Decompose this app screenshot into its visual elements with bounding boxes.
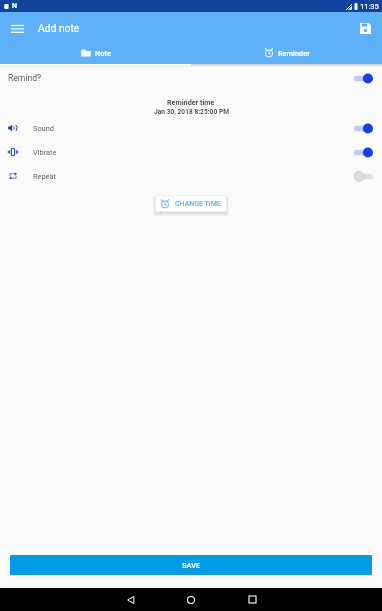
- button[interactable]: Remind?: [0, 64, 382, 92]
- button[interactable]: Recent apps: [237, 588, 267, 611]
- button[interactable]: Reminder: [191, 44, 382, 64]
- button[interactable]: Repeat: [0, 164, 382, 188]
- staticText: N: [12, 2, 17, 10]
- button[interactable]: Menu: [6, 17, 28, 39]
- staticText: SAVE: [182, 561, 201, 570]
- staticText: CHANGE TIME: [175, 200, 221, 208]
- button[interactable]: CHANGE TIME: [155, 195, 227, 212]
- button[interactable]: Vibrate: [0, 140, 382, 164]
- staticText: Repeat: [33, 172, 56, 181]
- button[interactable]: Toggle: [354, 123, 373, 134]
- button[interactable]: SAVE: [10, 555, 372, 575]
- button[interactable]: Toggle: [354, 73, 373, 84]
- staticText: Jan 30, 2018 8:25:00 PM: [154, 108, 229, 116]
- staticText: Reminder time: [167, 98, 215, 106]
- button[interactable]: Note: [0, 44, 191, 64]
- button[interactable]: Toggle: [354, 171, 373, 182]
- button[interactable]: Back: [116, 588, 146, 611]
- button[interactable]: Sound: [0, 116, 382, 140]
- button[interactable]: Save note: [355, 18, 375, 38]
- staticText: Reminder: [278, 49, 310, 58]
- staticText: Remind?: [8, 73, 42, 83]
- staticText: Add note: [38, 22, 80, 34]
- staticText: Note: [95, 49, 111, 58]
- button[interactable]: Toggle: [354, 147, 373, 158]
- staticText: 11:35: [360, 2, 379, 11]
- staticText: Vibrate: [33, 148, 57, 157]
- staticText: Sound: [33, 124, 54, 133]
- button[interactable]: Home: [176, 588, 206, 611]
